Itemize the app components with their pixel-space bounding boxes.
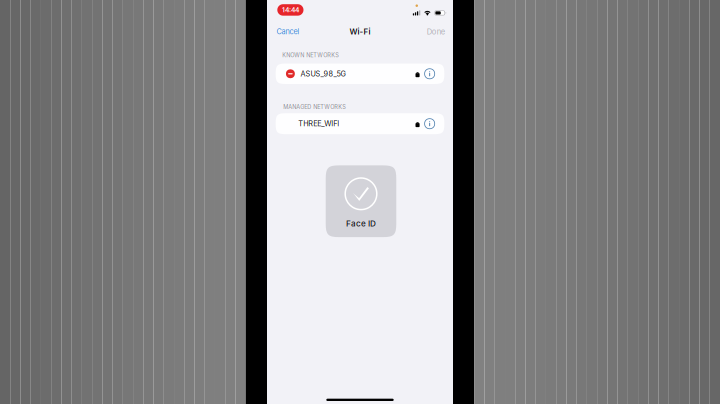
staticText: ASUS_98_5G	[300, 69, 345, 78]
staticText: Done	[427, 27, 445, 36]
button[interactable]: Cancel	[277, 25, 303, 38]
button[interactable]: ASUS_98_5G	[276, 64, 444, 84]
button[interactable]: Done	[424, 25, 445, 38]
staticText: KNOWN NETWORKS	[282, 52, 339, 59]
staticText: THREE_WIFI	[298, 119, 339, 128]
staticText: 14:44	[282, 6, 299, 14]
button[interactable]: THREE_WIFI	[276, 113, 444, 134]
staticText: Wi-Fi	[349, 27, 370, 36]
staticText: MANAGED NETWORKS	[283, 103, 346, 110]
staticText: Face ID	[346, 219, 376, 228]
staticText: Cancel	[277, 27, 300, 36]
